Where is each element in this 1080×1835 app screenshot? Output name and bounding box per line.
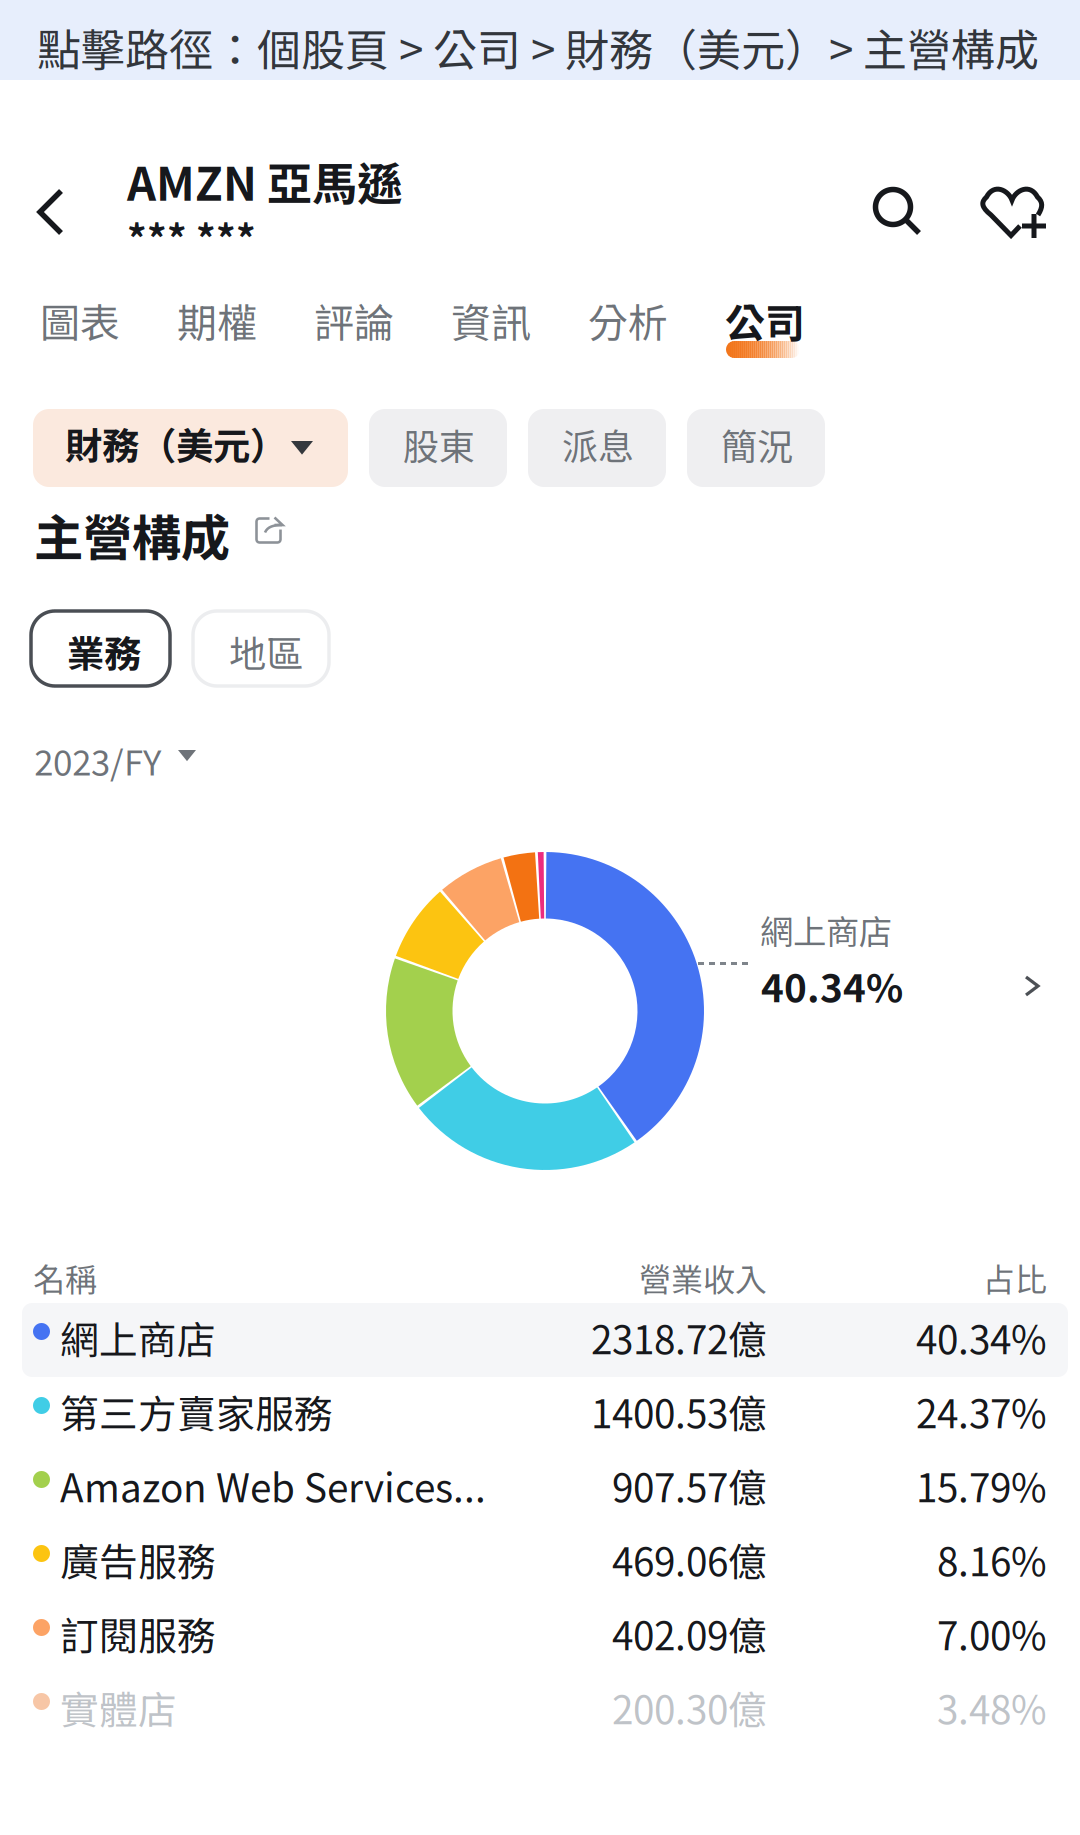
staticText: 200.30億	[612, 1680, 767, 1735]
staticText: 8.16%	[937, 1532, 1047, 1587]
staticText: 2318.72億	[591, 1310, 767, 1365]
button[interactable]: 實體店	[0, 1673, 1080, 1747]
staticText: AMZN 亞馬遜	[127, 149, 402, 213]
staticText: 主營構成	[34, 500, 230, 570]
staticText: 評論	[314, 292, 394, 348]
button[interactable]: 廣告服務	[0, 1525, 1080, 1599]
button[interactable]: 第三方賣家服務	[0, 1377, 1080, 1451]
button[interactable]: Back	[1, 162, 101, 262]
staticText: *** ***	[127, 209, 256, 264]
button[interactable]: 網上商店	[0, 1303, 1080, 1377]
staticText: 15.79%	[916, 1458, 1047, 1513]
staticText: 實體店	[60, 1680, 177, 1735]
staticText: 名稱	[33, 1255, 97, 1300]
button[interactable]: Add to watchlist	[968, 166, 1060, 258]
staticText: 點擊路徑：個股頁 > 公司 > 財務（美元）> 主營構成	[37, 16, 1039, 78]
button[interactable]: Amazon Web Services...	[0, 1451, 1080, 1525]
staticText: 圖表	[40, 292, 120, 348]
staticText: 40.34%	[916, 1310, 1047, 1365]
staticText: 簡況	[721, 419, 793, 470]
button[interactable]: 財務（美元）	[33, 409, 348, 487]
button[interactable]: 資訊	[451, 292, 541, 360]
button[interactable]: 簡況	[687, 409, 825, 487]
staticText: 股東	[403, 419, 475, 470]
staticText: Amazon Web Services...	[60, 1458, 486, 1513]
staticText: 財務（美元）	[65, 417, 287, 470]
staticText: 24.37%	[916, 1384, 1047, 1439]
staticText: 訂閱服務	[60, 1606, 216, 1661]
button[interactable]: 分析	[588, 292, 678, 360]
staticText: 派息	[562, 419, 634, 470]
staticText: 網上商店	[60, 1310, 216, 1365]
staticText: 分析	[588, 292, 668, 348]
staticText: 營業收入	[639, 1255, 767, 1300]
staticText: 469.06億	[612, 1532, 767, 1587]
button[interactable]: 業務	[31, 611, 170, 686]
staticText: 占比	[983, 1255, 1047, 1300]
staticText: 業務	[67, 625, 141, 678]
staticText: 期權	[177, 292, 257, 348]
staticText: 2023/FY	[34, 736, 161, 785]
button[interactable]: 期權	[177, 292, 267, 360]
staticText: 1400.53億	[591, 1384, 767, 1439]
staticText: 公司	[725, 292, 805, 348]
button[interactable]: 股東	[369, 409, 507, 487]
staticText: 第三方賣家服務	[60, 1384, 333, 1439]
staticText: 907.57億	[612, 1458, 767, 1513]
staticText: 網上商店	[760, 906, 892, 953]
button[interactable]: 訂閱服務	[0, 1599, 1080, 1673]
staticText: 資訊	[451, 292, 531, 348]
button[interactable]: 公司	[725, 292, 815, 360]
button[interactable]: 評論	[314, 292, 404, 360]
staticText: 地區	[229, 625, 303, 678]
staticText: 廣告服務	[60, 1532, 216, 1587]
button[interactable]: 2023/FY	[0, 720, 220, 780]
staticText: 7.00%	[937, 1606, 1047, 1661]
button[interactable]: Details	[1002, 953, 1062, 1017]
staticText: 3.48%	[937, 1680, 1047, 1735]
staticText: 40.34%	[761, 958, 903, 1013]
button[interactable]: Share	[242, 503, 298, 559]
staticText: 402.09億	[612, 1606, 767, 1661]
button[interactable]: 圖表	[40, 292, 130, 360]
button[interactable]: Search	[852, 166, 944, 258]
button[interactable]: 地區	[193, 611, 329, 686]
button[interactable]: 派息	[528, 409, 666, 487]
